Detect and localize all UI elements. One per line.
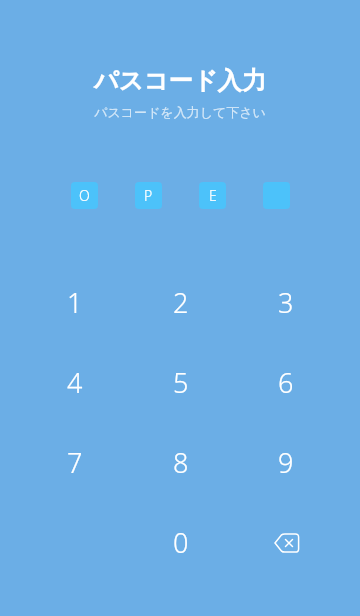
button[interactable]: Delete [233,502,338,582]
button[interactable]: 1 [22,262,128,342]
button[interactable]: 0 [128,502,233,582]
staticText: 9 [278,444,294,481]
staticText: 8 [173,444,189,481]
staticText: 0 [173,524,189,561]
staticText: 6 [278,364,294,401]
staticText: O [79,186,90,205]
staticText: 2 [173,284,189,321]
button[interactable]: 7 [22,422,128,502]
button[interactable]: 8 [128,422,233,502]
staticText: パスコード入力 [0,66,360,97]
other: Delete [272,530,300,554]
button[interactable]: 6 [233,342,338,422]
staticText: 4 [67,364,83,401]
button[interactable]: 5 [128,342,233,422]
button[interactable]: 9 [233,422,338,502]
staticText: 5 [173,364,189,401]
button[interactable]: 3 [233,262,338,342]
staticText: 7 [67,444,83,481]
staticText: パスコードを入力して下さい [0,104,360,120]
button[interactable]: 2 [128,262,233,342]
staticText: 3 [278,284,294,321]
staticText: 1 [67,284,83,321]
staticText: E [209,186,217,205]
staticText: P [144,186,153,205]
button[interactable]: 4 [22,342,128,422]
